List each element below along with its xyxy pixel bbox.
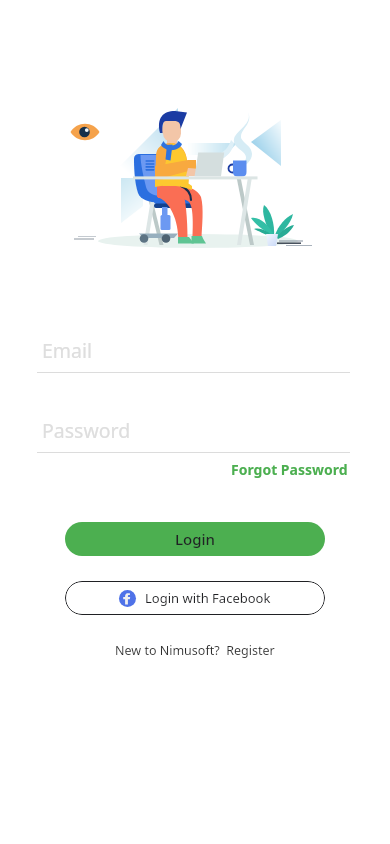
button[interactable]: Login [65,522,325,556]
staticText: New to Nimusoft? [115,642,223,659]
staticText: Login [175,529,215,549]
staticText: Forgot Password [231,460,348,479]
staticText: Register [223,642,275,659]
button[interactable]: Register [223,642,275,659]
staticText: Password [42,417,131,444]
button[interactable]: Login with Facebook [65,581,325,615]
staticText: Email [42,337,93,364]
staticText: Login with Facebook [145,589,271,607]
button[interactable]: Forgot Password [229,457,350,482]
